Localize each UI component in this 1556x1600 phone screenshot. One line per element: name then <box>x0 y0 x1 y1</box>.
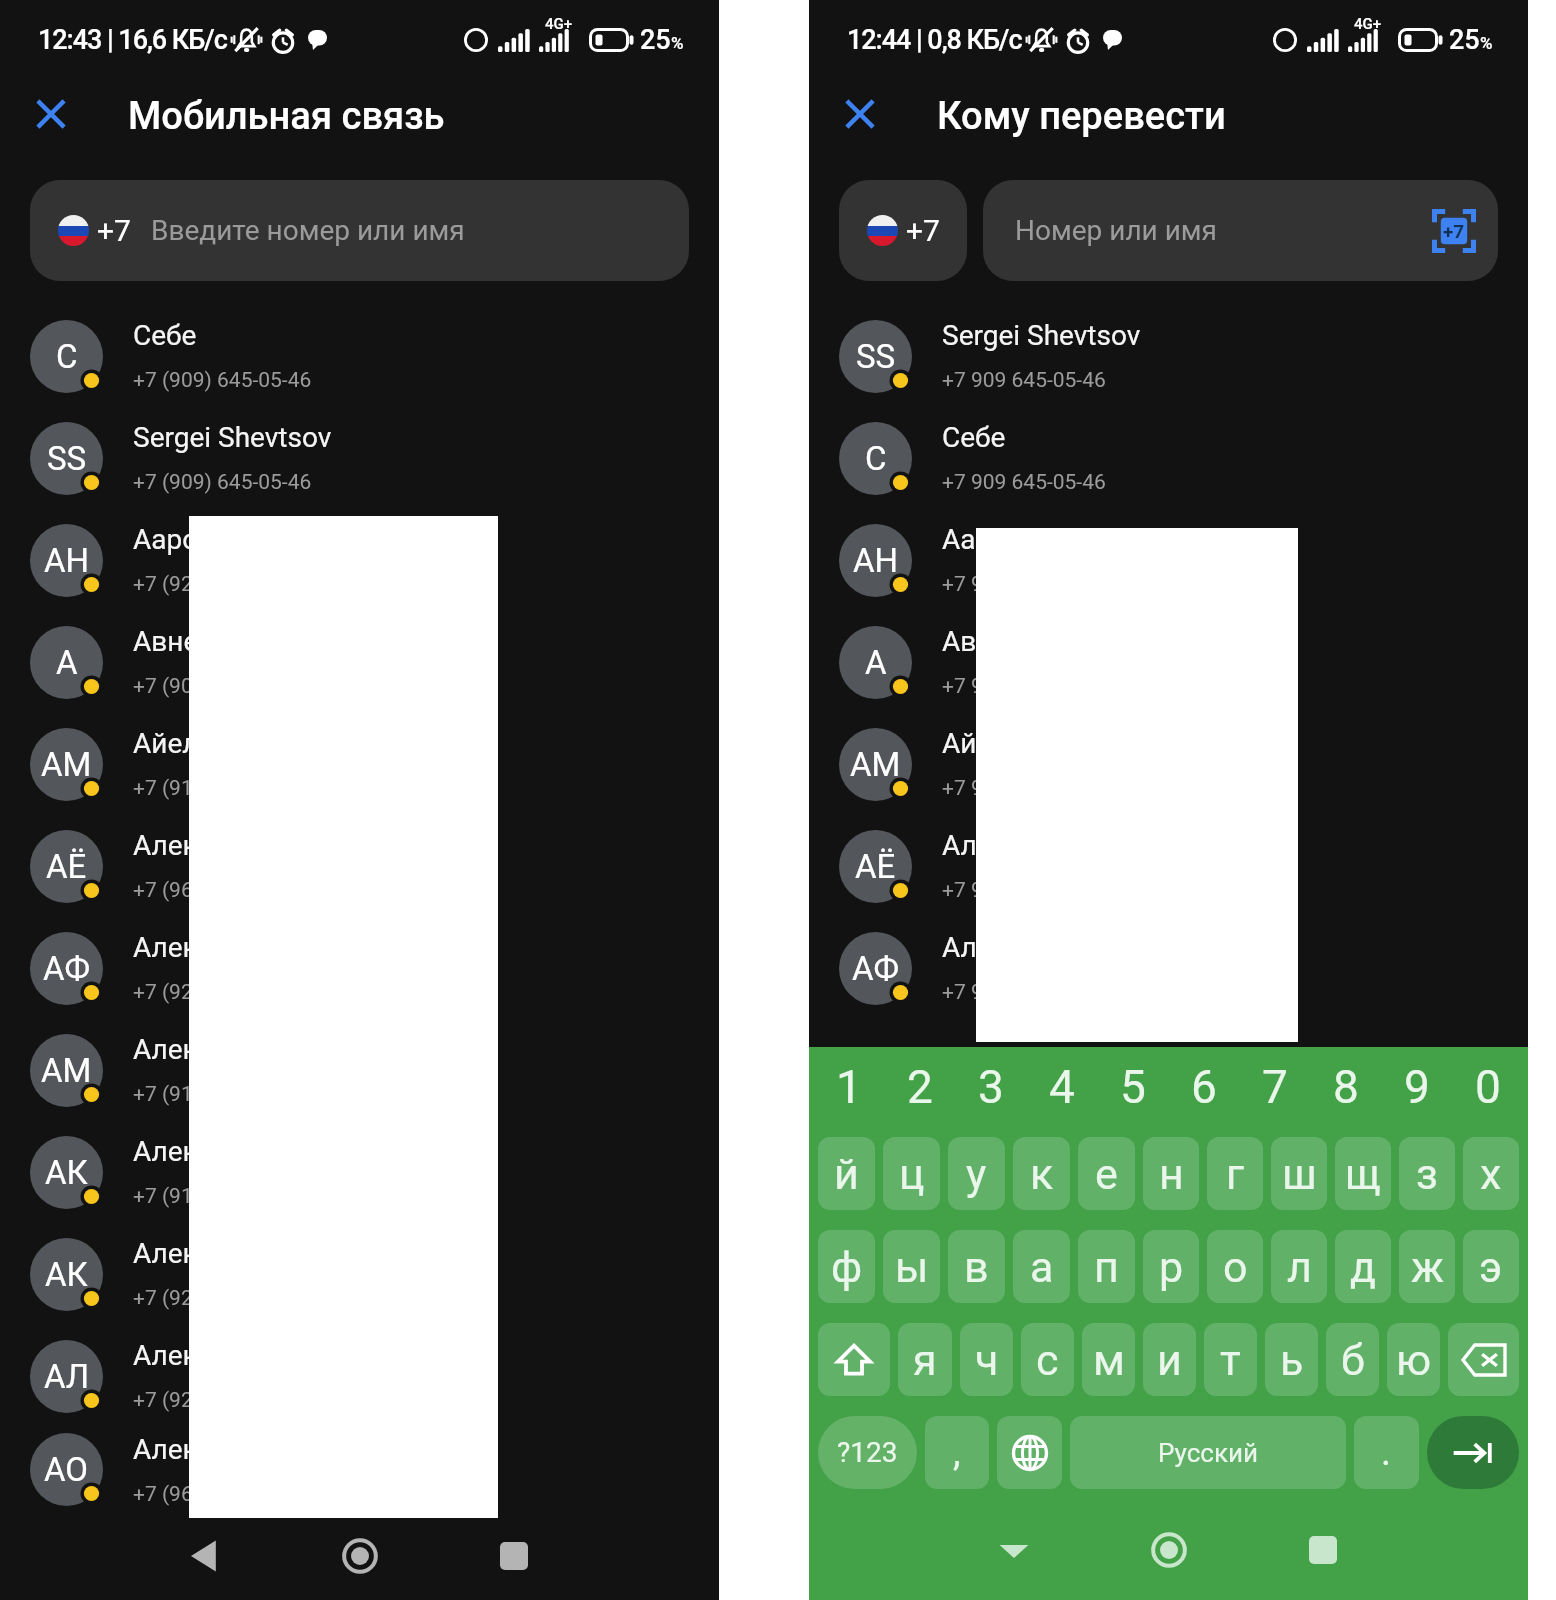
staticText: ю <box>1396 1335 1432 1385</box>
button[interactable]: Back <box>176 1527 234 1585</box>
button[interactable]: м <box>1082 1323 1135 1396</box>
button[interactable]: АК <box>0 1223 719 1325</box>
button[interactable]: х <box>1463 1137 1519 1210</box>
button[interactable]: ф <box>818 1230 875 1303</box>
button[interactable]: Scan number <box>1428 205 1480 257</box>
button[interactable]: я <box>898 1323 952 1396</box>
staticText: +7 (911) 000-00-00 <box>133 776 312 801</box>
button[interactable]: АЛ <box>0 1325 719 1427</box>
button[interactable]: 1 <box>814 1047 884 1127</box>
staticText: % <box>1480 33 1493 53</box>
staticText: АМ <box>41 745 92 784</box>
staticText: +7 (921) 000-00-00 <box>133 980 312 1005</box>
button[interactable]: ж <box>1399 1230 1455 1303</box>
staticText: Введите номер или имя <box>151 214 465 247</box>
button[interactable]: Русский <box>1070 1416 1346 1489</box>
button[interactable]: Close <box>828 84 892 143</box>
button[interactable]: АЁ <box>0 815 719 917</box>
staticText: ц <box>899 1149 925 1199</box>
button[interactable]: а <box>1013 1230 1070 1303</box>
button[interactable]: +7 <box>839 180 967 281</box>
button[interactable]: 0 <box>1452 1047 1523 1127</box>
button[interactable]: о <box>1207 1230 1263 1303</box>
button[interactable]: АО <box>0 1427 719 1512</box>
button[interactable]: п <box>1078 1230 1135 1303</box>
staticText: з <box>1416 1149 1438 1199</box>
button[interactable]: б <box>1326 1323 1379 1396</box>
button[interactable]: +7 <box>30 180 689 281</box>
staticText: Александр Мошков <box>133 1033 393 1066</box>
staticText: н <box>1159 1149 1184 1199</box>
button[interactable]: А <box>0 611 719 713</box>
button[interactable]: з <box>1399 1137 1455 1210</box>
button[interactable]: щ <box>1335 1137 1391 1210</box>
button[interactable]: Home <box>331 1527 389 1585</box>
button[interactable]: 9 <box>1381 1047 1452 1127</box>
button[interactable]: SS <box>809 305 1528 407</box>
button[interactable]: Recents <box>1294 1521 1352 1579</box>
button[interactable]: д <box>1335 1230 1391 1303</box>
button[interactable]: ц <box>883 1137 940 1210</box>
button[interactable]: л <box>1271 1230 1327 1303</box>
button[interactable]: . <box>1354 1416 1419 1489</box>
staticText: +7 911 000-00-00 <box>942 776 1106 801</box>
button[interactable]: 2 <box>884 1047 955 1127</box>
button[interactable]: ь <box>1265 1323 1318 1396</box>
staticText: п <box>1094 1242 1119 1292</box>
button[interactable]: Close <box>19 84 83 143</box>
button[interactable]: С <box>0 305 719 407</box>
button[interactable]: 3 <box>955 1047 1026 1127</box>
button[interactable]: н <box>1143 1137 1199 1210</box>
button[interactable]: ч <box>960 1323 1013 1396</box>
button[interactable]: Backspace <box>1448 1323 1519 1396</box>
button[interactable]: АФ <box>0 917 719 1019</box>
button[interactable]: Change language <box>997 1416 1062 1489</box>
button[interactable]: й <box>818 1137 875 1210</box>
button[interactable]: АМ <box>809 713 1528 815</box>
button[interactable]: АЁ <box>809 815 1528 917</box>
staticText: Александр Лебедев <box>133 1339 396 1372</box>
button[interactable]: к <box>1013 1137 1070 1210</box>
button[interactable]: АК <box>0 1121 719 1223</box>
staticText: ?123 <box>837 1436 898 1469</box>
staticText: Себе <box>942 421 1006 454</box>
button[interactable]: ю <box>1387 1323 1440 1396</box>
button[interactable]: Shift <box>818 1323 890 1396</box>
staticText: +7 909 645-05-46 <box>942 368 1106 393</box>
button[interactable]: 6 <box>1168 1047 1239 1127</box>
button[interactable]: АН <box>809 509 1528 611</box>
button[interactable]: 4 <box>1026 1047 1097 1127</box>
button[interactable]: АН <box>0 509 719 611</box>
button[interactable]: А <box>809 611 1528 713</box>
staticText: 5 <box>1120 1060 1146 1114</box>
button[interactable]: Номер или имя <box>983 180 1498 281</box>
button[interactable]: Home <box>1140 1521 1198 1579</box>
button[interactable]: с <box>1021 1323 1074 1396</box>
staticText: Александр Фомин <box>942 931 1183 964</box>
button[interactable]: ш <box>1271 1137 1327 1210</box>
button[interactable]: С <box>809 407 1528 509</box>
button[interactable]: АМ <box>0 713 719 815</box>
button[interactable]: ?123 <box>818 1416 917 1489</box>
button[interactable]: 5 <box>1097 1047 1168 1127</box>
button[interactable]: г <box>1207 1137 1263 1210</box>
staticText: SS <box>856 337 896 376</box>
button[interactable]: р <box>1143 1230 1199 1303</box>
button[interactable]: SS <box>0 407 719 509</box>
button[interactable]: т <box>1204 1323 1257 1396</box>
button[interactable]: 7 <box>1239 1047 1310 1127</box>
button[interactable]: э <box>1463 1230 1519 1303</box>
button[interactable]: в <box>948 1230 1005 1303</box>
button[interactable]: е <box>1078 1137 1135 1210</box>
button[interactable]: и <box>1143 1323 1196 1396</box>
button[interactable]: , <box>925 1416 989 1489</box>
button[interactable]: у <box>948 1137 1005 1210</box>
staticText: Александр Орлов <box>133 1433 367 1466</box>
button[interactable]: ы <box>883 1230 940 1303</box>
button[interactable]: 8 <box>1310 1047 1381 1127</box>
button[interactable]: Recents <box>485 1527 543 1585</box>
button[interactable]: Next <box>1427 1416 1519 1489</box>
button[interactable]: АМ <box>0 1019 719 1121</box>
button[interactable]: АФ <box>809 917 1528 1019</box>
button[interactable]: Hide keyboard <box>985 1521 1043 1579</box>
